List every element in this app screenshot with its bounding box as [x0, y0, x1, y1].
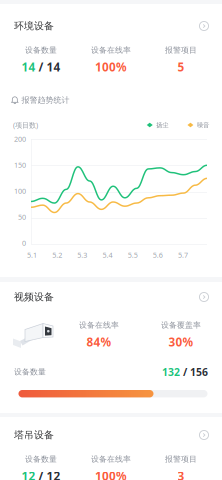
staticText: 设备覆盖率: [161, 320, 201, 330]
staticText: 5: [177, 59, 184, 75]
staticText: 5.5: [128, 250, 138, 260]
button[interactable]: 视频设备: [0, 291, 222, 303]
staticText: 5.6: [153, 250, 163, 260]
staticText: 报警项目: [165, 45, 197, 55]
staticText: 12: [21, 468, 35, 480]
staticText: 200: [14, 134, 26, 144]
button[interactable]: 环境设备: [0, 20, 222, 32]
staticText: 50: [18, 212, 26, 222]
staticText: 132: [162, 365, 180, 379]
staticText: 0: [22, 238, 26, 248]
staticText: 150: [14, 160, 26, 170]
staticText: 扬尘: [156, 121, 168, 129]
staticText: 5.4: [102, 250, 112, 260]
staticText: 设备在线率: [91, 45, 131, 55]
staticText: (项目数): [13, 120, 38, 130]
staticText: 塔吊设备: [14, 429, 54, 441]
button[interactable]: 塔吊设备: [0, 429, 222, 441]
staticText: 5.7: [178, 250, 188, 260]
staticText: 100: [14, 186, 26, 196]
staticText: 100%: [95, 59, 127, 75]
staticText: 100%: [95, 468, 127, 480]
staticText: 30%: [168, 334, 193, 350]
staticText: 噪音: [197, 121, 209, 129]
staticText: 5.3: [77, 250, 87, 260]
staticText: 设备在线率: [91, 454, 131, 464]
staticText: 14: [21, 59, 35, 75]
staticText: / 14: [35, 59, 60, 75]
staticText: 视频设备: [14, 291, 54, 303]
staticText: 84%: [86, 334, 111, 350]
staticText: 设备数量: [25, 45, 57, 55]
staticText: 5.1: [27, 250, 37, 260]
staticText: 设备数量: [25, 454, 57, 464]
staticText: / 12: [35, 468, 60, 480]
staticText: 3: [177, 468, 184, 480]
staticText: 环境设备: [14, 20, 54, 32]
staticText: / 156: [180, 365, 208, 379]
staticText: 设备数量: [14, 367, 46, 377]
staticText: 设备在线率: [79, 320, 119, 330]
staticText: 5.2: [52, 250, 62, 260]
staticText: 报警趋势统计: [22, 95, 70, 105]
staticText: 报警项目: [165, 454, 197, 464]
